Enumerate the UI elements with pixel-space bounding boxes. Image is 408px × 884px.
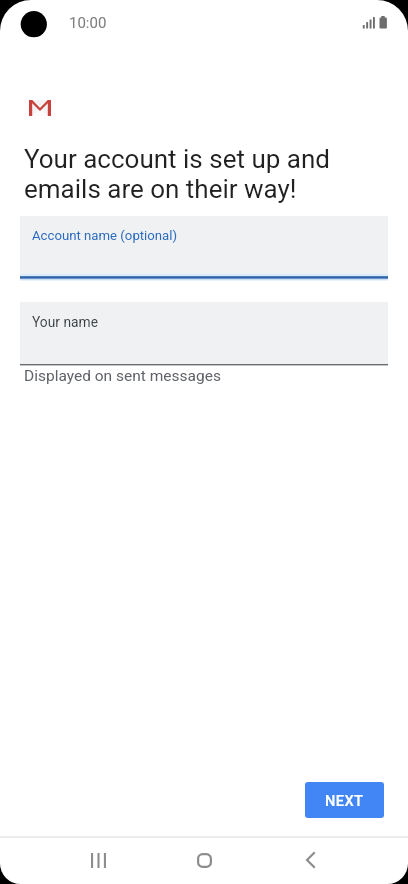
- staticText: Displayed on sent messages: [24, 367, 221, 385]
- staticText: Your name: [32, 314, 98, 330]
- button[interactable]: Recent apps: [74, 836, 122, 884]
- button[interactable]: Home: [180, 836, 228, 884]
- button[interactable]: Back: [286, 836, 334, 884]
- button[interactable]: NEXT: [305, 782, 384, 818]
- staticText: Account name (optional): [32, 228, 178, 243]
- button[interactable]: Account name (optional): [20, 216, 388, 277]
- staticText: NEXT: [325, 792, 364, 809]
- staticText: 10:00: [69, 14, 107, 32]
- button[interactable]: Your name: [20, 302, 388, 364]
- staticText: Your account is set up and emails are on…: [24, 144, 330, 204]
